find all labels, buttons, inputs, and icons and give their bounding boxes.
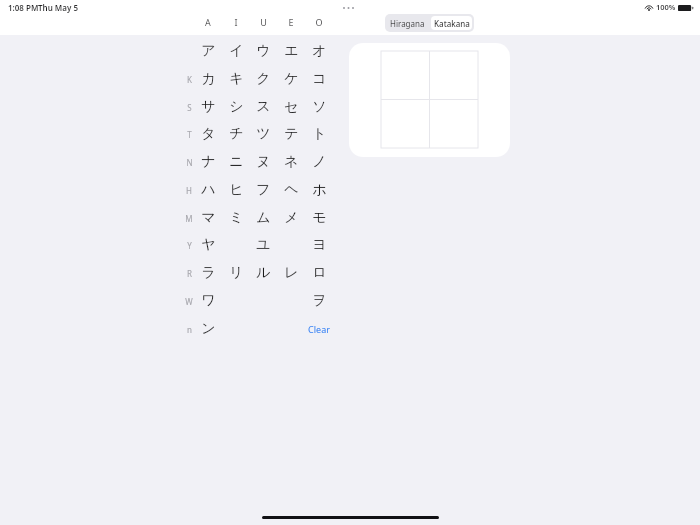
staticText: Clear — [308, 323, 330, 335]
staticText: チ — [229, 125, 244, 143]
button[interactable]: ツ — [251, 123, 275, 145]
button[interactable]: エ — [279, 40, 303, 62]
staticText: セ — [284, 98, 299, 116]
button[interactable]: ノ — [307, 151, 331, 173]
button[interactable]: Hiragana — [385, 14, 429, 32]
button[interactable]: ソ — [307, 96, 331, 118]
button[interactable]: ヨ — [307, 234, 331, 256]
button[interactable]: ラ — [196, 262, 220, 284]
staticText: ヌ — [256, 153, 271, 171]
staticText: シ — [229, 98, 244, 116]
button[interactable]: ハ — [196, 179, 220, 201]
staticText: ム — [256, 209, 271, 227]
button[interactable]: ロ — [307, 262, 331, 284]
button[interactable]: ト — [307, 123, 331, 145]
staticText: O — [315, 16, 323, 28]
staticText: Y — [187, 240, 192, 251]
button[interactable]: タ — [196, 123, 220, 145]
button[interactable]: ヒ — [224, 179, 248, 201]
staticText: ヤ — [201, 236, 216, 254]
button[interactable]: モ — [307, 207, 331, 229]
button[interactable]: レ — [279, 262, 303, 284]
staticText: ニ — [229, 153, 244, 171]
staticText: ロ — [312, 264, 327, 282]
button[interactable]: ク — [251, 68, 275, 90]
button[interactable]: カ — [196, 68, 220, 90]
staticText: Hiragana — [390, 18, 425, 29]
button[interactable]: Clear — [303, 321, 335, 337]
button[interactable]: Drawing practice area — [349, 43, 510, 157]
staticText: n — [187, 324, 192, 335]
staticText: オ — [312, 42, 327, 60]
staticText: ワ — [201, 292, 216, 310]
button[interactable]: ス — [251, 96, 275, 118]
button[interactable]: リ — [224, 262, 248, 284]
button[interactable]: ヘ — [279, 179, 303, 201]
button[interactable]: ホ — [307, 179, 331, 201]
staticText: キ — [229, 70, 244, 88]
staticText: ツ — [256, 125, 271, 143]
staticText: カ — [201, 70, 216, 88]
button[interactable]: フ — [251, 179, 275, 201]
staticText: I — [234, 16, 238, 28]
staticText: ヘ — [284, 181, 299, 199]
button[interactable]: マ — [196, 207, 220, 229]
button[interactable]: テ — [279, 123, 303, 145]
staticText: モ — [312, 209, 327, 227]
button[interactable]: ウ — [251, 40, 275, 62]
staticText: ユ — [256, 236, 271, 254]
staticText: コ — [312, 70, 327, 88]
button[interactable]: ネ — [279, 151, 303, 173]
button[interactable]: ン — [196, 318, 220, 340]
other: Wi-Fi — [644, 3, 654, 12]
button[interactable]: ナ — [196, 151, 220, 173]
staticText: S — [187, 102, 192, 113]
staticText: ノ — [312, 153, 327, 171]
button[interactable]: チ — [224, 123, 248, 145]
staticText: ケ — [284, 70, 299, 88]
button[interactable]: オ — [307, 40, 331, 62]
button[interactable]: Katakana — [431, 16, 472, 30]
staticText: N — [186, 157, 193, 168]
staticText: エ — [284, 42, 299, 60]
staticText: ハ — [201, 181, 216, 199]
staticText: ン — [201, 320, 216, 338]
button[interactable]: ヲ — [307, 290, 331, 312]
other: Multitasking options — [341, 4, 357, 12]
staticText: ウ — [256, 42, 271, 60]
staticText: リ — [229, 264, 244, 282]
button[interactable]: シ — [224, 96, 248, 118]
button[interactable]: キ — [224, 68, 248, 90]
button[interactable]: セ — [279, 96, 303, 118]
button[interactable]: イ — [224, 40, 248, 62]
staticText: ラ — [201, 264, 216, 282]
button[interactable]: メ — [279, 207, 303, 229]
button[interactable]: ム — [251, 207, 275, 229]
button[interactable]: ル — [251, 262, 275, 284]
button[interactable]: ヤ — [196, 234, 220, 256]
staticText: イ — [229, 42, 244, 60]
staticText: ト — [312, 125, 327, 143]
staticText: E — [288, 16, 294, 28]
staticText: タ — [201, 125, 216, 143]
button[interactable]: ア — [196, 40, 220, 62]
staticText: ソ — [312, 98, 327, 116]
staticText: W — [185, 296, 193, 307]
button[interactable]: ユ — [251, 234, 275, 256]
button[interactable]: ワ — [196, 290, 220, 312]
button[interactable]: ケ — [279, 68, 303, 90]
staticText: Katakana — [434, 18, 470, 29]
button[interactable]: コ — [307, 68, 331, 90]
staticText: A — [205, 16, 211, 28]
button[interactable]: ミ — [224, 207, 248, 229]
staticText: マ — [201, 209, 216, 227]
other: Battery full — [678, 4, 694, 12]
button[interactable]: サ — [196, 96, 220, 118]
staticText: ナ — [201, 153, 216, 171]
staticText: ヨ — [312, 236, 327, 254]
staticText: 1:08 PM — [8, 2, 39, 13]
button[interactable]: ニ — [224, 151, 248, 173]
button[interactable]: ヌ — [251, 151, 275, 173]
staticText: H — [186, 185, 192, 196]
staticText: ネ — [284, 153, 299, 171]
